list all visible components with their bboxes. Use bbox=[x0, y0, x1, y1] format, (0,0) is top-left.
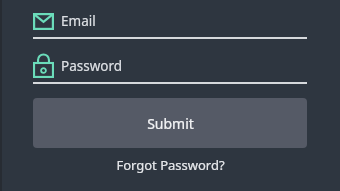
button[interactable]: Forgot Password? bbox=[110, 154, 231, 176]
button[interactable]: Email bbox=[33, 8, 307, 34]
button[interactable]: Password bbox=[33, 52, 307, 79]
other: Email bbox=[33, 13, 54, 30]
staticText: Email bbox=[61, 12, 96, 30]
staticText: Submit bbox=[147, 114, 194, 133]
staticText: Password bbox=[61, 57, 123, 75]
staticText: Forgot Password? bbox=[116, 156, 225, 174]
other: Password bbox=[33, 53, 54, 78]
button[interactable]: Submit bbox=[33, 98, 307, 148]
